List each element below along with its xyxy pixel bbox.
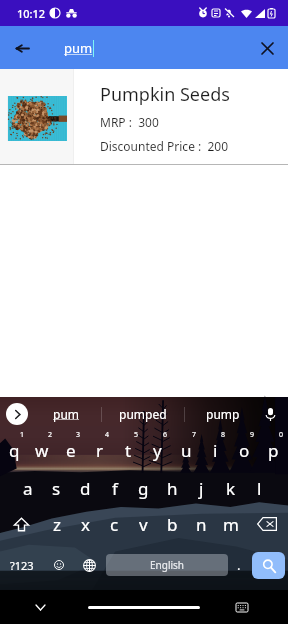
staticText: 0 <box>279 430 284 440</box>
button[interactable]: 1 <box>0 429 28 467</box>
staticText: Discounted Price : 200 <box>100 138 229 154</box>
staticText: g <box>138 477 149 500</box>
button[interactable]: 3 <box>56 429 85 467</box>
button[interactable]: Backspace <box>245 505 288 543</box>
staticText: 7 <box>192 430 197 440</box>
button[interactable]: Switch keyboard <box>232 597 252 617</box>
button[interactable]: Expand suggestions <box>6 403 28 425</box>
staticText: z <box>53 513 61 536</box>
staticText: w <box>35 439 49 462</box>
staticText: p <box>268 439 279 462</box>
button[interactable]: 5 <box>114 429 143 467</box>
staticText: d <box>80 477 91 500</box>
staticText: pump <box>206 406 240 422</box>
button[interactable]: a <box>14 467 42 505</box>
staticText: 1 <box>20 430 25 440</box>
button[interactable]: Hide keyboard <box>30 597 50 617</box>
button[interactable]: Voice input <box>258 402 282 426</box>
button[interactable]: b <box>158 505 187 543</box>
staticText: pumped <box>119 406 167 422</box>
button[interactable]: l <box>245 467 274 505</box>
button[interactable]: Change language <box>74 545 104 585</box>
staticText: i <box>213 439 218 462</box>
staticText: m <box>223 513 239 536</box>
staticText: k <box>226 477 236 500</box>
button[interactable]: ?123 <box>0 545 44 585</box>
button[interactable]: Search <box>252 552 285 579</box>
button[interactable]: pump <box>185 397 260 431</box>
staticText: t <box>125 439 132 462</box>
button[interactable]: g <box>129 467 158 505</box>
button[interactable]: 4 <box>85 429 114 467</box>
staticText: a <box>23 477 33 500</box>
button[interactable]: pumped <box>102 397 184 431</box>
button[interactable]: pum <box>31 397 101 431</box>
staticText: e <box>66 439 76 462</box>
staticText: s <box>52 477 61 500</box>
staticText: c <box>110 513 119 536</box>
button[interactable]: Back <box>8 34 36 62</box>
staticText: v <box>139 513 148 536</box>
staticText: q <box>9 439 20 462</box>
staticText: 3 <box>76 430 81 440</box>
staticText: pum <box>64 39 93 57</box>
button[interactable]: j <box>187 467 216 505</box>
button[interactable]: 2 <box>28 429 56 467</box>
staticText: 6 <box>163 430 168 440</box>
button[interactable]: x <box>71 505 100 543</box>
button[interactable]: Clear search <box>253 34 281 62</box>
staticText: n <box>196 513 207 536</box>
button[interactable]: z <box>43 505 71 543</box>
button[interactable]: n <box>187 505 216 543</box>
staticText: 2 <box>48 430 53 440</box>
button[interactable]: 8 <box>201 429 230 467</box>
staticText: 9 <box>250 430 255 440</box>
button[interactable]: . <box>230 545 248 585</box>
staticText: ?123 <box>10 558 34 573</box>
staticText: j <box>199 477 204 500</box>
staticText: Pumpkin Seeds <box>100 82 230 107</box>
button[interactable]: m <box>216 505 245 543</box>
staticText: x <box>81 513 90 536</box>
staticText: l <box>257 477 262 500</box>
staticText: 10:12 <box>17 6 46 21</box>
staticText: 4 <box>105 430 110 440</box>
staticText: h <box>167 477 178 500</box>
staticText: 8 <box>221 430 226 440</box>
staticText: y <box>153 439 162 462</box>
button[interactable]: v <box>129 505 158 543</box>
staticText: MRP : 300 <box>100 114 159 130</box>
button[interactable]: 7 <box>172 429 201 467</box>
button[interactable]: 9 <box>230 429 259 467</box>
button[interactable]: Pumpkin Seeds <box>0 69 288 165</box>
staticText: . <box>237 556 241 574</box>
button[interactable]: English <box>106 554 228 576</box>
button[interactable]: Shift <box>0 505 43 543</box>
staticText: b <box>167 513 178 536</box>
button[interactable]: 6 <box>143 429 172 467</box>
staticText: r <box>96 439 104 462</box>
button[interactable]: Emoji <box>44 545 74 585</box>
staticText: f <box>112 477 118 500</box>
staticText: English <box>150 558 185 572</box>
staticText: 5 <box>134 430 139 440</box>
staticText: pum <box>53 406 80 422</box>
button[interactable]: k <box>216 467 245 505</box>
button[interactable]: c <box>100 505 129 543</box>
button[interactable]: d <box>71 467 100 505</box>
staticText: o <box>239 439 250 462</box>
button[interactable]: h <box>158 467 187 505</box>
button[interactable]: 0 <box>259 429 288 467</box>
button[interactable]: s <box>42 467 71 505</box>
button[interactable]: f <box>100 467 129 505</box>
staticText: u <box>181 439 192 462</box>
